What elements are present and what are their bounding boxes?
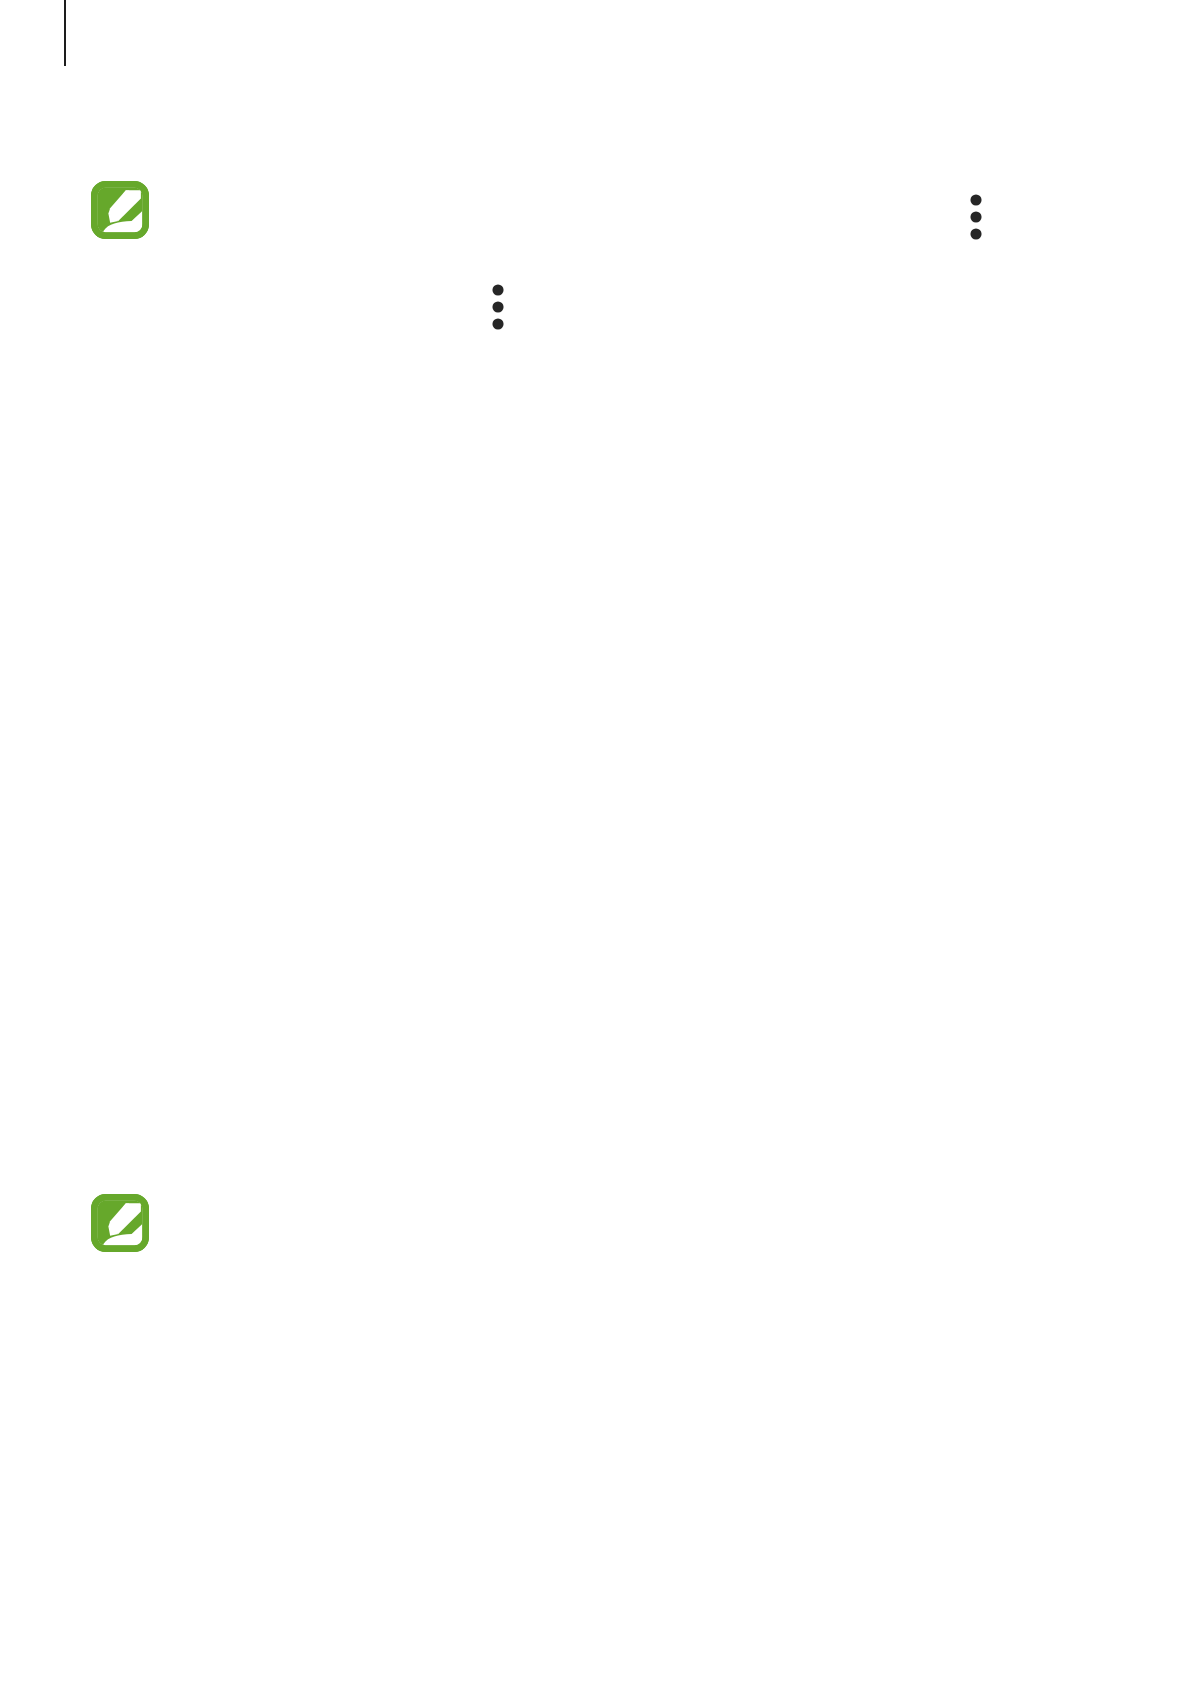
- button[interactable]: More options: [483, 283, 513, 331]
- button[interactable]: More options: [961, 193, 991, 241]
- button[interactable]: S Note: [91, 181, 149, 239]
- button[interactable]: S Note: [91, 1194, 149, 1252]
